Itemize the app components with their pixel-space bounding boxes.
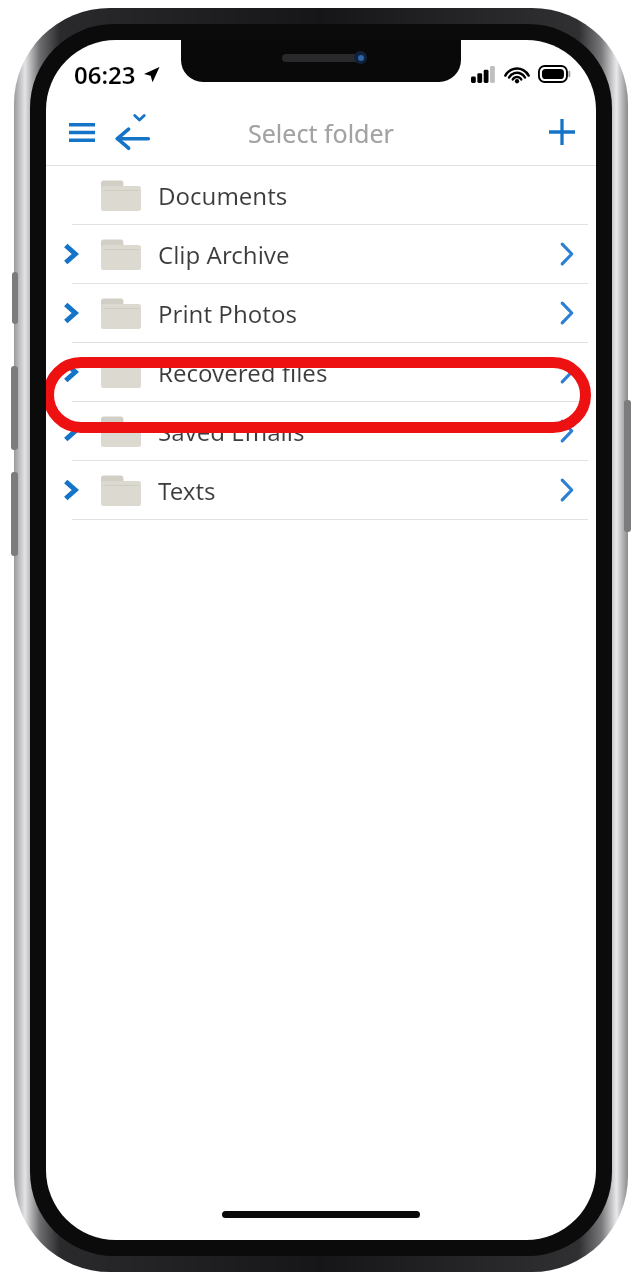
staticText: Texts — [158, 474, 538, 507]
button[interactable]: Texts — [46, 461, 596, 519]
button[interactable]: Menu — [54, 104, 110, 160]
staticText: Clip Archive — [158, 238, 538, 271]
staticText: Select folder — [248, 116, 394, 150]
button[interactable]: Back — [102, 102, 162, 162]
button[interactable]: Clip Archive — [46, 225, 596, 283]
staticText: 06:23 — [74, 58, 136, 91]
button[interactable]: Print Photos — [46, 284, 596, 342]
staticText: Print Photos — [158, 297, 538, 330]
button[interactable]: Saved Emails — [46, 402, 596, 460]
button[interactable]: Documents — [46, 166, 596, 224]
staticText: Saved Emails — [158, 415, 538, 448]
button[interactable]: Recovered files — [46, 343, 596, 401]
staticText: Documents — [158, 179, 538, 212]
button[interactable]: Add folder — [534, 104, 590, 160]
staticText: Recovered files — [158, 356, 538, 389]
